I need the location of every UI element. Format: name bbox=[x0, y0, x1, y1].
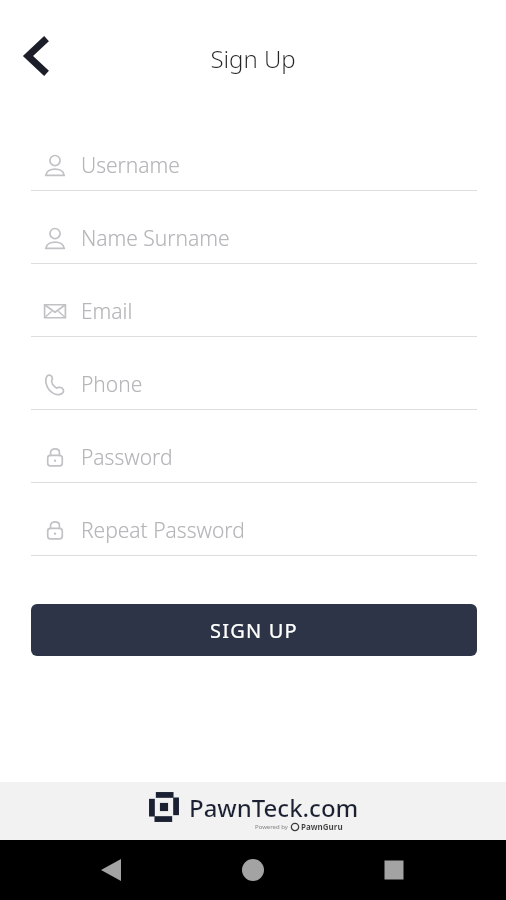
staticText: Repeat Password bbox=[81, 516, 245, 545]
button[interactable]: SIGN UP bbox=[31, 604, 477, 656]
staticText: Username bbox=[81, 151, 180, 180]
staticText: Name Surname bbox=[81, 224, 230, 253]
button[interactable]: Email bbox=[31, 286, 477, 337]
staticText: Phone bbox=[81, 370, 143, 399]
button[interactable]: Repeat Password bbox=[31, 505, 477, 556]
button[interactable]: Home bbox=[233, 850, 273, 890]
staticText: Sign Up bbox=[0, 42, 506, 75]
staticText: SIGN UP bbox=[210, 617, 298, 644]
button[interactable]: Recent apps bbox=[374, 850, 414, 890]
staticText: Powered by bbox=[255, 823, 288, 831]
button[interactable]: Back bbox=[12, 32, 60, 80]
button[interactable]: Password bbox=[31, 432, 477, 483]
button[interactable]: Name Surname bbox=[31, 213, 477, 264]
button[interactable]: Back bbox=[92, 850, 132, 890]
staticText: Email bbox=[81, 297, 133, 326]
staticText: Password bbox=[81, 443, 173, 472]
staticText: PawnTeck.com bbox=[189, 791, 359, 824]
staticText: PawnGuru bbox=[301, 821, 343, 832]
button[interactable]: Username bbox=[31, 140, 477, 191]
button[interactable]: Phone bbox=[31, 359, 477, 410]
